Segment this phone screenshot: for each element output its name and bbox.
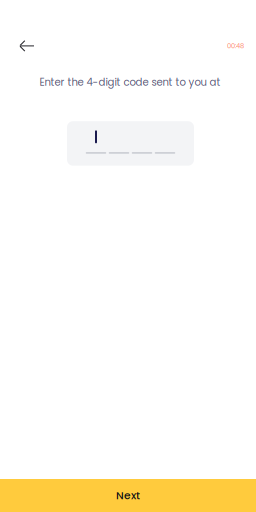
button[interactable]: Back xyxy=(19,33,49,59)
staticText: 00:48 xyxy=(227,41,244,51)
staticText: Next xyxy=(116,488,140,503)
button[interactable]: 4-digit verification code xyxy=(67,121,194,166)
staticText: Enter the 4-digit code sent to you at xyxy=(39,75,220,89)
button[interactable]: Next xyxy=(0,479,256,512)
